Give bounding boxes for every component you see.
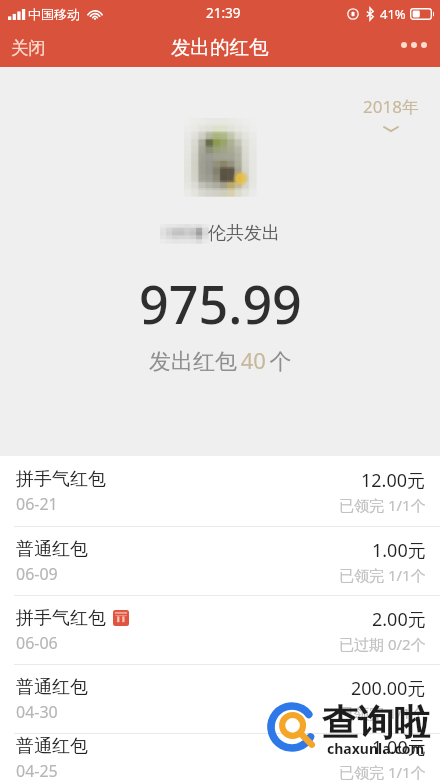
staticText: 已过期 0/2个 xyxy=(339,634,426,654)
staticText: 06-09 xyxy=(16,563,58,585)
staticText: 21:39 xyxy=(206,4,241,22)
button[interactable]: 普通红包 xyxy=(0,734,440,782)
staticText: 普通红包 xyxy=(16,538,88,561)
staticText: chaxunla.com xyxy=(327,739,425,758)
button[interactable]: 拼手气红包 xyxy=(0,456,440,526)
staticText: 拼手气红包 xyxy=(16,468,106,491)
staticText: 中国移动 xyxy=(28,6,80,22)
button[interactable]: 关闭 xyxy=(0,28,62,67)
staticText: 06-21 xyxy=(16,493,58,515)
staticText: 1.00元 xyxy=(372,735,426,760)
button[interactable]: More options xyxy=(389,28,440,67)
staticText: 已领完 1/1个 xyxy=(339,703,426,723)
staticText: 06-06 xyxy=(16,632,58,654)
button[interactable]: 拼手气红包 xyxy=(0,596,440,664)
staticText: 普通红包 xyxy=(16,735,88,758)
staticText: 发出的红包 xyxy=(171,35,269,60)
staticText: 04-30 xyxy=(16,701,58,723)
staticText: 200.00元 xyxy=(351,676,426,701)
staticText: 1.00元 xyxy=(372,538,426,563)
staticText: 发出红包 40 个 xyxy=(149,345,292,375)
staticText: 查询啦 xyxy=(322,700,430,745)
button[interactable]: 普通红包 xyxy=(0,527,440,595)
staticText: 普通红包 xyxy=(16,676,88,699)
staticText: 2.00元 xyxy=(372,607,426,632)
staticText: 41% xyxy=(380,5,406,23)
staticText: 关闭 xyxy=(11,37,46,59)
staticText: 04-25 xyxy=(16,760,58,782)
staticText: 12.00元 xyxy=(361,468,426,493)
button[interactable]: 普通红包 xyxy=(0,665,440,733)
staticText: 已领完 1/1个 xyxy=(339,762,426,782)
staticText: 拼手气红包 xyxy=(16,607,106,630)
button[interactable]: 2018年 xyxy=(355,89,427,138)
staticText: 伦共发出 xyxy=(208,222,280,245)
staticText: 2018年 xyxy=(363,95,419,118)
staticText: 975.99 xyxy=(139,268,302,339)
staticText: 已领完 1/1个 xyxy=(339,565,426,585)
staticText: 已领完 1/1个 xyxy=(339,495,426,515)
